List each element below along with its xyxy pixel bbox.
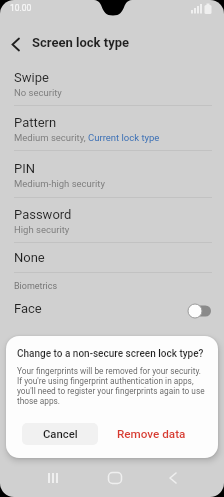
staticText: Cancel xyxy=(43,428,78,441)
button[interactable]: PIN xyxy=(0,151,224,197)
staticText: High security xyxy=(14,224,70,235)
staticText: Password xyxy=(14,207,72,222)
staticText: Face xyxy=(14,301,42,316)
button[interactable] xyxy=(158,463,188,493)
staticText: 10.00 xyxy=(10,3,32,13)
staticText: Current lock type xyxy=(88,132,160,143)
staticText: No security xyxy=(14,87,62,98)
staticText: Screen lock type xyxy=(32,35,130,50)
button[interactable]: Face xyxy=(0,292,224,324)
staticText: Your fingerprints will be removed for yo… xyxy=(17,366,205,406)
button[interactable]: Swipe xyxy=(0,60,224,105)
button[interactable]: None xyxy=(0,243,224,272)
button[interactable]: Remove data xyxy=(113,423,189,445)
staticText: Biometrics xyxy=(14,281,58,292)
staticText: Medium security, xyxy=(14,132,88,143)
staticText: Remove data xyxy=(117,427,186,441)
staticText: Pattern xyxy=(14,115,57,130)
button[interactable]: Cancel xyxy=(22,423,98,445)
staticText: Change to a non-secure screen lock type? xyxy=(17,348,204,360)
staticText: None xyxy=(14,250,45,265)
button[interactable] xyxy=(38,463,68,493)
button[interactable]: Pattern xyxy=(0,106,224,150)
button[interactable] xyxy=(0,20,30,60)
button[interactable] xyxy=(97,463,127,493)
button[interactable]: Password xyxy=(0,198,224,242)
staticText: Swipe xyxy=(14,70,49,85)
staticText: PIN xyxy=(14,161,36,176)
staticText: Medium-high security xyxy=(14,178,105,189)
